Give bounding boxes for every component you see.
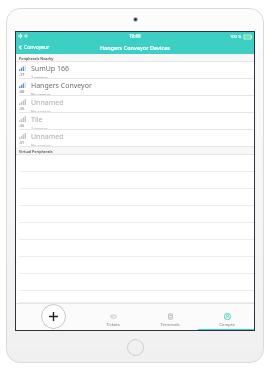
staticText: -60: [19, 89, 25, 94]
staticText: Convoyeur: [24, 44, 50, 51]
staticText: No service: [31, 92, 51, 96]
staticText: 19:49: [129, 33, 141, 39]
button[interactable]: -77: [15, 62, 255, 79]
staticText: 100 %: [230, 34, 242, 39]
button[interactable]: Tickets: [85, 307, 141, 331]
staticText: Hangers Conveyor Devices: [100, 44, 170, 51]
staticText: 1 service: [31, 75, 48, 79]
staticText: Tile: [31, 115, 43, 125]
button[interactable]: -86: [15, 96, 255, 113]
staticText: Terminals: [160, 322, 180, 328]
staticText: 1 service: [31, 126, 48, 130]
staticText: Virtual Peripherals: [19, 149, 53, 154]
staticText: No service: [31, 143, 51, 147]
staticText: Hangers Conveyor: [31, 81, 92, 91]
staticText: -86: [19, 123, 25, 128]
button[interactable]: -60: [15, 79, 255, 96]
staticText: SumUp 166: [31, 64, 69, 74]
button[interactable]: Compte: [198, 307, 255, 331]
staticText: Peripherals Nearby: [19, 56, 54, 61]
button[interactable]: Convoyeur: [15, 42, 54, 53]
staticText: No service: [31, 109, 51, 113]
button[interactable]: Terminals: [141, 307, 198, 331]
button[interactable]: -87: [15, 130, 255, 147]
staticText: Compte: [219, 322, 235, 328]
staticText: Unnamed: [31, 132, 64, 142]
staticText: -86: [19, 106, 25, 111]
staticText: Tickets: [106, 322, 120, 328]
staticText: Unnamed: [31, 98, 64, 108]
button[interactable]: -86: [15, 113, 255, 130]
staticText: -77: [19, 72, 25, 77]
staticText: -87: [19, 140, 25, 145]
button[interactable]: Add peripheral: [41, 304, 66, 329]
